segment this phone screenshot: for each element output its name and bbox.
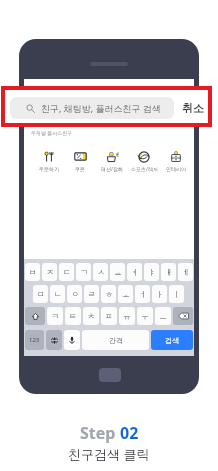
button[interactable]: 인테리어 xyxy=(161,150,191,172)
staticText: ㅡ xyxy=(159,311,167,321)
button[interactable]: ㅁ xyxy=(33,285,48,303)
button[interactable]: ㅊ xyxy=(83,307,99,325)
staticText: ㅣ xyxy=(173,289,181,299)
staticText: ㅑ xyxy=(148,267,156,277)
button[interactable]: ㅑ xyxy=(144,263,159,281)
staticText: ㅕ xyxy=(131,267,139,277)
staticText: 인테리어 xyxy=(166,166,186,172)
staticText: 주문하기 xyxy=(39,166,59,172)
staticText: 취소 xyxy=(182,101,204,115)
staticText: ㅗ xyxy=(122,289,130,299)
button[interactable]: ㅎ xyxy=(101,285,116,303)
staticText: ㅋ xyxy=(51,311,59,321)
staticText: 패션/잡화 xyxy=(101,166,123,173)
staticText: ㅓ xyxy=(139,289,147,299)
button[interactable]: 주문하기 xyxy=(34,150,64,172)
button[interactable]: ㅔ xyxy=(178,263,193,281)
button[interactable]: ㅗ xyxy=(118,285,133,303)
staticText: 123 xyxy=(29,336,40,344)
button[interactable]: ㄹ xyxy=(84,285,99,303)
staticText: 간격 xyxy=(109,336,123,345)
button[interactable]: 패션/잡화 xyxy=(97,150,127,173)
staticText: ㅐ xyxy=(165,267,173,277)
button[interactable]: 친구, 채팅방, 플러스친구 검색 xyxy=(10,97,174,119)
button[interactable]: 검색 xyxy=(151,330,193,350)
button[interactable]: ㄷ xyxy=(59,263,74,281)
staticText: 친구, 채팅방, 플러스친구 검색 xyxy=(41,102,161,114)
button[interactable]: Change language xyxy=(46,330,62,350)
staticText: ㄱ xyxy=(80,267,88,277)
staticText: 스포츠/레저 xyxy=(131,166,158,173)
button[interactable]: ㅐ xyxy=(161,263,176,281)
staticText: ㅔ xyxy=(182,267,190,277)
button[interactable]: 취소 xyxy=(179,96,197,116)
staticText: 취소 xyxy=(179,101,197,112)
button[interactable]: ㄴ xyxy=(50,285,65,303)
button[interactable]: 취소 xyxy=(179,97,207,119)
staticText: 검색 xyxy=(165,336,179,345)
staticText: ㅂ xyxy=(29,267,37,277)
button[interactable]: Shift xyxy=(25,307,45,325)
button[interactable]: ㅣ xyxy=(169,285,184,303)
button[interactable]: ㅇ xyxy=(67,285,82,303)
button[interactable]: ㄱ xyxy=(76,263,91,281)
staticText: 쿠폰 xyxy=(75,166,85,172)
button[interactable]: 123 xyxy=(25,330,44,350)
staticText: ㅜ xyxy=(141,311,149,321)
staticText: ㅏ xyxy=(156,289,164,299)
button[interactable]: ㅠ xyxy=(119,307,135,325)
button[interactable]: ㅋ xyxy=(47,307,63,325)
button[interactable]: ㅈ xyxy=(42,263,57,281)
button[interactable]: ㅛ xyxy=(110,263,125,281)
button[interactable]: ㅡ xyxy=(155,307,171,325)
staticText: 주제별 플러스친구 xyxy=(31,130,73,137)
button[interactable]: 친구, 채팅방, 플러스친구 검색 xyxy=(26,96,173,116)
button[interactable]: ㅍ xyxy=(101,307,117,325)
staticText: ㅅ xyxy=(97,267,105,277)
button[interactable]: ㅕ xyxy=(127,263,142,281)
button[interactable]: 스포츠/레저 xyxy=(129,150,159,173)
button[interactable]: ㅜ xyxy=(137,307,153,325)
staticText: ㄷ xyxy=(63,267,71,277)
staticText: Step xyxy=(80,422,120,444)
button[interactable]: ㅓ xyxy=(135,285,150,303)
staticText: ㅈ xyxy=(46,267,54,277)
staticText: ㅍ xyxy=(105,311,113,321)
button[interactable]: ㅅ xyxy=(93,263,108,281)
staticText: ㅊ xyxy=(87,311,95,321)
button[interactable]: Voice input xyxy=(64,330,80,350)
button[interactable]: Backspace xyxy=(173,307,193,325)
button[interactable]: ㅏ xyxy=(152,285,167,303)
staticText: ㅎ xyxy=(105,289,113,299)
staticText: 02 xyxy=(120,422,139,444)
staticText: ㅇ xyxy=(71,289,79,299)
staticText: ㅁ xyxy=(37,289,45,299)
staticText: 친구, 채팅방, 플러스친구 검색 xyxy=(44,101,138,111)
button[interactable]: ㅂ xyxy=(25,263,40,281)
staticText: ㄹ xyxy=(88,289,96,299)
button[interactable]: 간격 xyxy=(82,330,149,350)
button[interactable]: ㅌ xyxy=(65,307,81,325)
staticText: ㄴ xyxy=(54,289,62,299)
staticText: ㅌ xyxy=(69,311,77,321)
button[interactable]: 쿠폰 xyxy=(65,150,95,172)
staticText: ㅠ xyxy=(123,311,131,321)
staticText: ㅛ xyxy=(114,267,122,277)
staticText: 친구검색 클릭 xyxy=(68,445,150,463)
